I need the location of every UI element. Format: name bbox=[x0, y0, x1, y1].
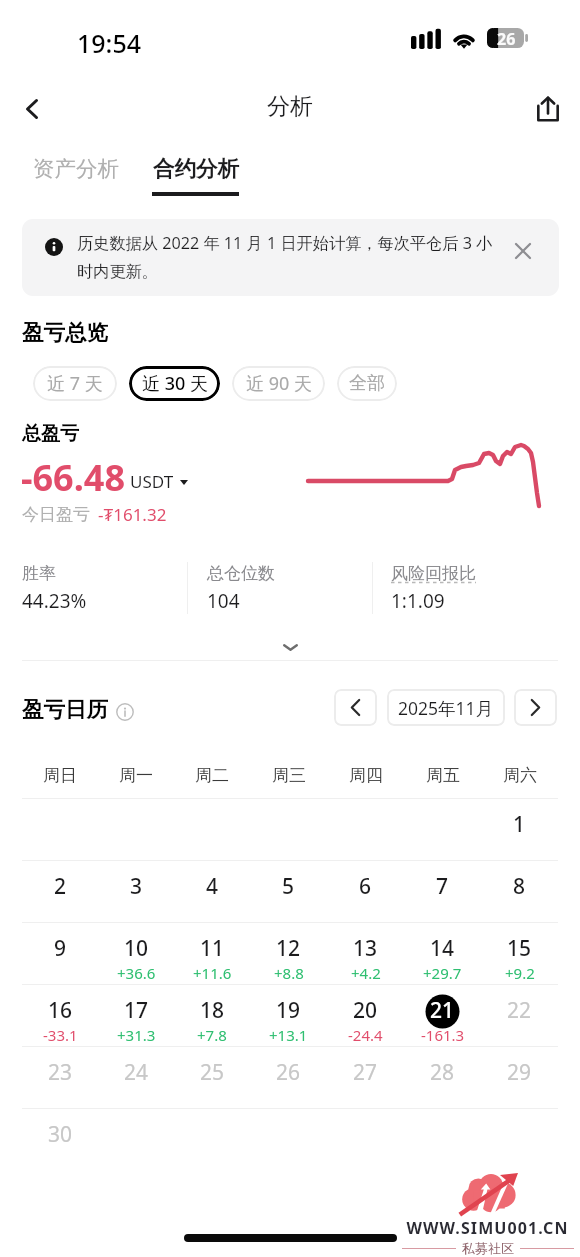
staticText: 私募社区 bbox=[462, 1240, 514, 1256]
staticText: 12 bbox=[276, 934, 301, 963]
button[interactable]: 18 bbox=[174, 985, 250, 1046]
staticText: 周六 bbox=[503, 765, 537, 786]
staticText: 30 bbox=[48, 1120, 73, 1149]
button[interactable]: 9 bbox=[22, 923, 98, 984]
button[interactable]: 25 bbox=[174, 1047, 250, 1108]
staticText: 19:54 bbox=[77, 26, 142, 60]
staticText: +11.6 bbox=[193, 963, 232, 983]
button[interactable]: 2025年11月 bbox=[387, 689, 505, 726]
staticText: +7.8 bbox=[197, 1025, 227, 1045]
staticText: 盈亏总览 bbox=[22, 319, 108, 346]
staticText: USDT bbox=[130, 470, 174, 493]
button[interactable]: 13 bbox=[327, 923, 404, 984]
staticText: 20 bbox=[353, 996, 378, 1025]
button[interactable]: USDT bbox=[130, 470, 188, 493]
button[interactable]: 胜率 bbox=[22, 563, 87, 614]
staticText: 周三 bbox=[272, 765, 306, 786]
staticText: 25 bbox=[200, 1058, 225, 1087]
staticText: 8 bbox=[513, 872, 526, 901]
button[interactable]: Close bbox=[506, 234, 540, 268]
staticText: 3 bbox=[130, 872, 143, 901]
staticText: 2025年11月 bbox=[398, 696, 494, 720]
staticText: +8.8 bbox=[274, 963, 304, 983]
staticText: 今日盈亏 bbox=[22, 504, 90, 525]
button[interactable]: 17 bbox=[98, 985, 174, 1046]
button[interactable]: 26 bbox=[250, 1047, 327, 1108]
button[interactable]: 近 30 天 bbox=[129, 366, 220, 401]
button[interactable]: 10 bbox=[98, 923, 174, 984]
staticText: 1:1.09 bbox=[391, 588, 445, 614]
button[interactable]: 总仓位数 bbox=[207, 563, 275, 614]
button[interactable]: 7 bbox=[404, 861, 481, 922]
button[interactable]: 资产分析 bbox=[27, 149, 125, 188]
staticText: WWW.SIMU001.CN bbox=[401, 1217, 574, 1239]
button[interactable]: 29 bbox=[481, 1047, 558, 1108]
staticText: 21 bbox=[430, 996, 455, 1025]
staticText: -161.3 bbox=[421, 1025, 465, 1045]
button[interactable]: 21 bbox=[404, 985, 481, 1046]
staticText: 历史数据从 2022 年 11 月 1 日开始计算，每次平仓后 3 小 时内更新… bbox=[77, 232, 547, 282]
button[interactable]: 11 bbox=[174, 923, 250, 984]
staticText: +4.2 bbox=[351, 963, 381, 983]
staticText: 总盈亏 bbox=[22, 422, 79, 446]
button[interactable]: 20 bbox=[327, 985, 404, 1046]
staticText: 总仓位数 bbox=[207, 563, 275, 584]
button[interactable]: Share bbox=[524, 85, 572, 133]
staticText: 周一 bbox=[119, 765, 153, 786]
button[interactable]: 3 bbox=[98, 861, 174, 922]
button[interactable]: 合约分析 bbox=[146, 149, 245, 202]
staticText: 7 bbox=[436, 872, 449, 901]
staticText: 16 bbox=[48, 996, 73, 1025]
staticText: 胜率 bbox=[22, 563, 56, 584]
staticText: 17 bbox=[124, 996, 149, 1025]
staticText: -66.48 bbox=[21, 453, 126, 502]
staticText: 5 bbox=[282, 872, 295, 901]
staticText: 近 7 天 bbox=[47, 371, 103, 396]
staticText: 4 bbox=[206, 872, 219, 901]
staticText: +29.7 bbox=[423, 963, 462, 983]
staticText: 26 bbox=[497, 28, 516, 48]
button[interactable]: 2 bbox=[22, 861, 98, 922]
staticText: 周四 bbox=[349, 765, 383, 786]
staticText: 6 bbox=[359, 872, 372, 901]
staticText: 分析 bbox=[267, 92, 313, 121]
staticText: 44.23% bbox=[22, 588, 87, 614]
button[interactable]: Previous month bbox=[334, 689, 377, 726]
staticText: 1 bbox=[513, 810, 526, 839]
button[interactable]: 16 bbox=[22, 985, 98, 1046]
staticText: 11 bbox=[200, 934, 225, 963]
button[interactable]: 19 bbox=[250, 985, 327, 1046]
staticText: +9.2 bbox=[505, 963, 535, 983]
button[interactable]: 8 bbox=[481, 861, 558, 922]
button[interactable]: 近 90 天 bbox=[232, 366, 325, 401]
staticText: -24.4 bbox=[348, 1025, 383, 1045]
button[interactable]: 30 bbox=[22, 1109, 98, 1170]
staticText: 全部 bbox=[349, 372, 385, 395]
button[interactable]: 12 bbox=[250, 923, 327, 984]
button[interactable]: 风险回报比 bbox=[391, 563, 476, 614]
staticText: -33.1 bbox=[43, 1025, 78, 1045]
staticText: 104 bbox=[207, 588, 240, 614]
button[interactable]: 6 bbox=[327, 861, 404, 922]
staticText: 23 bbox=[48, 1058, 73, 1087]
button[interactable]: Back bbox=[8, 85, 56, 133]
staticText: 近 90 天 bbox=[246, 371, 312, 396]
button[interactable]: 全部 bbox=[337, 366, 397, 401]
button[interactable]: 4 bbox=[174, 861, 250, 922]
button[interactable]: 1 bbox=[481, 799, 558, 860]
button[interactable]: Expand bbox=[266, 628, 314, 666]
staticText: 资产分析 bbox=[33, 155, 119, 182]
button[interactable]: 22 bbox=[481, 985, 558, 1046]
button[interactable]: Next month bbox=[514, 689, 557, 726]
button[interactable]: 28 bbox=[404, 1047, 481, 1108]
button[interactable]: 24 bbox=[98, 1047, 174, 1108]
button[interactable]: 14 bbox=[404, 923, 481, 984]
staticText: 27 bbox=[353, 1058, 378, 1087]
staticText: 周二 bbox=[195, 765, 229, 786]
button[interactable]: 5 bbox=[250, 861, 327, 922]
button[interactable]: 27 bbox=[327, 1047, 404, 1108]
button[interactable]: 23 bbox=[22, 1047, 98, 1108]
button[interactable]: 近 7 天 bbox=[33, 366, 117, 401]
staticText: -₮161.32 bbox=[98, 503, 167, 526]
button[interactable]: 15 bbox=[481, 923, 558, 984]
